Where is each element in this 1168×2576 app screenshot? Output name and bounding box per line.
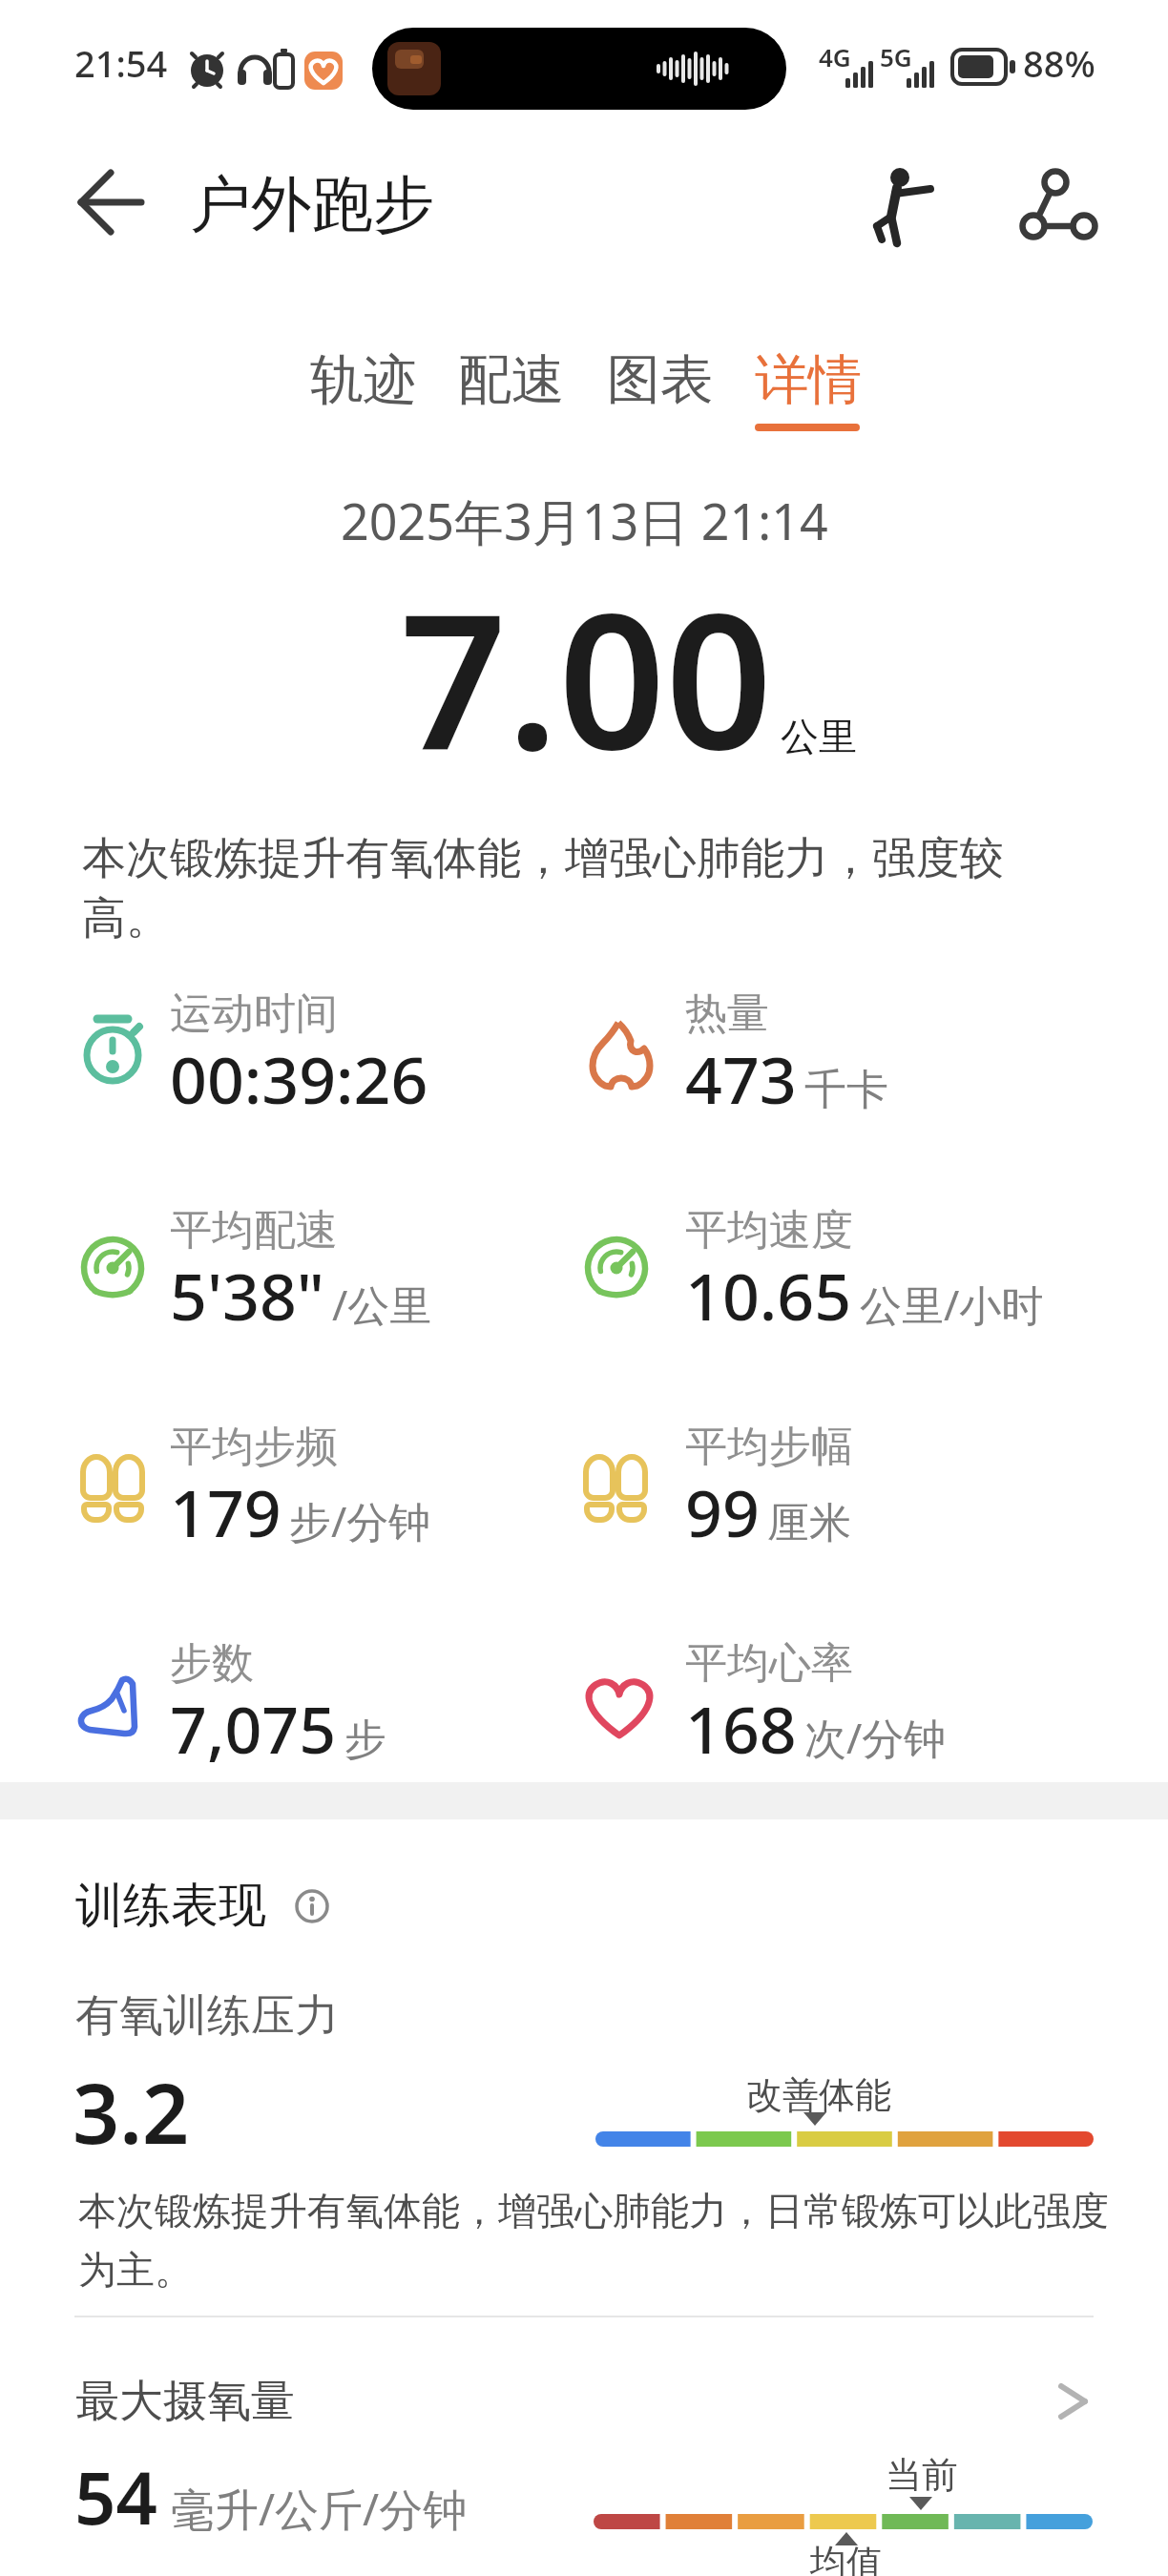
button[interactable] bbox=[597, 337, 723, 442]
staticText: 10.65 bbox=[685, 1251, 852, 1340]
staticText: 有氧训练压力 bbox=[75, 1988, 339, 2044]
staticText: 本次锻炼提升有氧体能，增强心肺能力，日常锻炼可以此强度 为主。 bbox=[78, 2187, 1109, 2295]
staticText: 均值 bbox=[810, 2540, 883, 2576]
staticText: 473 bbox=[685, 1034, 797, 1123]
button[interactable] bbox=[57, 162, 162, 248]
button[interactable] bbox=[448, 337, 574, 442]
staticText: 公里 bbox=[781, 713, 857, 760]
staticText: 179 bbox=[170, 1467, 282, 1556]
staticText: 配速 bbox=[458, 346, 565, 414]
staticText: 公里/小时 bbox=[860, 1276, 1044, 1333]
staticText: 本次锻炼提升有氧体能，增强心肺能力，强度较 高。 bbox=[82, 831, 1004, 946]
staticText: 4G bbox=[819, 40, 851, 73]
staticText: 99 bbox=[685, 1467, 760, 1556]
staticText: 3.2 bbox=[73, 2056, 190, 2168]
staticText: 5G bbox=[880, 40, 912, 73]
button[interactable] bbox=[57, 2347, 1111, 2442]
button[interactable] bbox=[1002, 157, 1107, 243]
staticText: 毫升/公斤/分钟 bbox=[171, 2479, 468, 2539]
staticText: 厘米 bbox=[767, 1497, 851, 1549]
staticText: 户外跑步 bbox=[190, 166, 434, 243]
staticText: 图表 bbox=[607, 346, 714, 414]
staticText: 详情 bbox=[755, 346, 862, 414]
staticText: 步/分钟 bbox=[289, 1492, 431, 1549]
staticText: 训练表现 bbox=[75, 1876, 266, 1936]
button[interactable] bbox=[372, 28, 786, 110]
staticText: 00:39:26 bbox=[170, 1034, 428, 1123]
staticText: 7.00 bbox=[400, 549, 773, 803]
staticText: 当前 bbox=[886, 2452, 958, 2498]
staticText: 5'38" bbox=[170, 1251, 324, 1340]
staticText: 热量 bbox=[685, 987, 769, 1040]
staticText: 步 bbox=[344, 1714, 386, 1766]
staticText: 88% bbox=[1023, 38, 1095, 88]
button[interactable] bbox=[859, 157, 945, 253]
staticText: 平均步幅 bbox=[685, 1421, 853, 1473]
staticText: /公里 bbox=[332, 1276, 432, 1333]
staticText: 平均步频 bbox=[170, 1421, 338, 1473]
staticText: 7,075 bbox=[170, 1684, 337, 1773]
staticText: 千卡 bbox=[804, 1064, 888, 1116]
staticText: 2025年3月13日 21:14 bbox=[341, 487, 828, 554]
staticText: 改善体能 bbox=[746, 2072, 891, 2118]
staticText: 最大摄氧量 bbox=[75, 2374, 295, 2429]
staticText: 平均配速 bbox=[170, 1204, 338, 1257]
staticText: 平均心率 bbox=[685, 1637, 853, 1690]
staticText: 运动时间 bbox=[170, 987, 338, 1040]
button[interactable] bbox=[745, 337, 871, 442]
staticText: 21:54 bbox=[74, 38, 168, 88]
staticText: 168 bbox=[685, 1684, 797, 1773]
button[interactable] bbox=[286, 1880, 340, 1933]
staticText: 次/分钟 bbox=[804, 1709, 947, 1766]
staticText: 轨迹 bbox=[310, 346, 417, 414]
staticText: 步数 bbox=[170, 1637, 254, 1690]
button[interactable] bbox=[301, 337, 427, 442]
staticText: 平均速度 bbox=[685, 1204, 853, 1257]
staticText: 54 bbox=[74, 2447, 157, 2546]
